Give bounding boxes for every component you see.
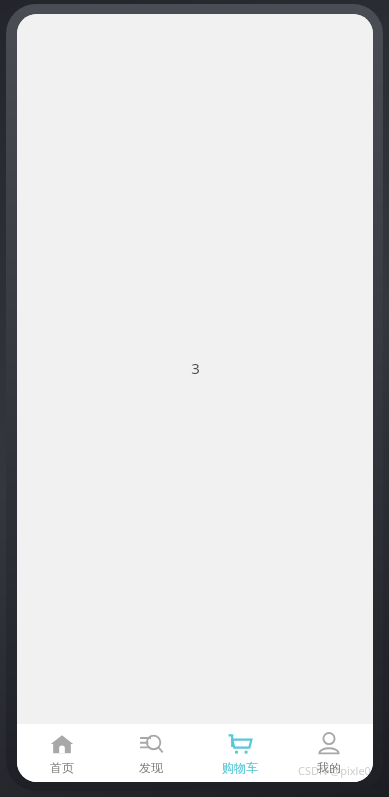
- button[interactable]: 购物车: [195, 724, 284, 782]
- staticText: 首页: [50, 760, 74, 775]
- staticText: CSDN @pixle0: [298, 763, 371, 778]
- staticText: 我的: [317, 760, 341, 775]
- staticText: 发现: [139, 760, 163, 775]
- button[interactable]: 首页: [17, 724, 106, 782]
- staticText: 购物车: [222, 760, 258, 775]
- button[interactable]: 发现: [106, 724, 195, 782]
- staticText: 3: [191, 358, 200, 378]
- button[interactable]: 我的: [284, 724, 373, 782]
